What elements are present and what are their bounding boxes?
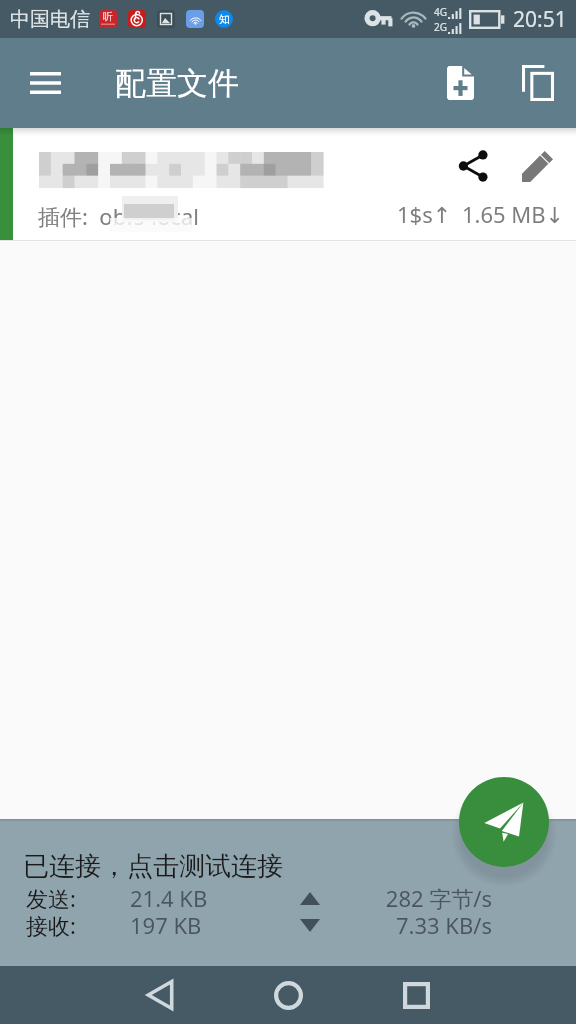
button[interactable]: 插件: obfs-local [0, 128, 576, 241]
staticText: 21.4 KB [130, 883, 208, 913]
button[interactable]: Menu [13, 51, 77, 115]
button[interactable]: Home [256, 966, 320, 1024]
staticText: 197 KB [130, 910, 202, 940]
button[interactable]: Import from clipboard [508, 53, 568, 113]
staticText: 7.33 KB/s [320, 910, 492, 940]
staticText: 插件: obfs-local [38, 201, 199, 231]
staticText: 中国电信 [10, 7, 90, 32]
staticText: 282 字节/s [320, 883, 492, 913]
staticText: 20:51 [513, 5, 567, 34]
staticText: 发送: [26, 883, 76, 913]
button[interactable]: Edit [516, 145, 558, 187]
button[interactable]: Back [128, 966, 192, 1024]
staticText: 接收: [26, 910, 76, 940]
button[interactable]: 已连接，点击测试连接 [0, 819, 576, 966]
staticText: 配置文件 [115, 64, 239, 103]
staticText: 知 [219, 12, 230, 26]
button[interactable]: Add profile [430, 53, 490, 113]
staticText: 1.65 MB↓ [462, 199, 565, 229]
staticText: 4G [434, 5, 447, 19]
staticText: 已连接，点击测试连接 [23, 850, 283, 883]
button[interactable]: Connect [459, 777, 549, 867]
staticText: 听 [103, 10, 113, 23]
button[interactable]: Recent apps [384, 966, 448, 1024]
staticText: 2G [434, 20, 447, 34]
staticText: 1$s↑ [397, 199, 452, 229]
button[interactable]: Share [452, 145, 494, 187]
